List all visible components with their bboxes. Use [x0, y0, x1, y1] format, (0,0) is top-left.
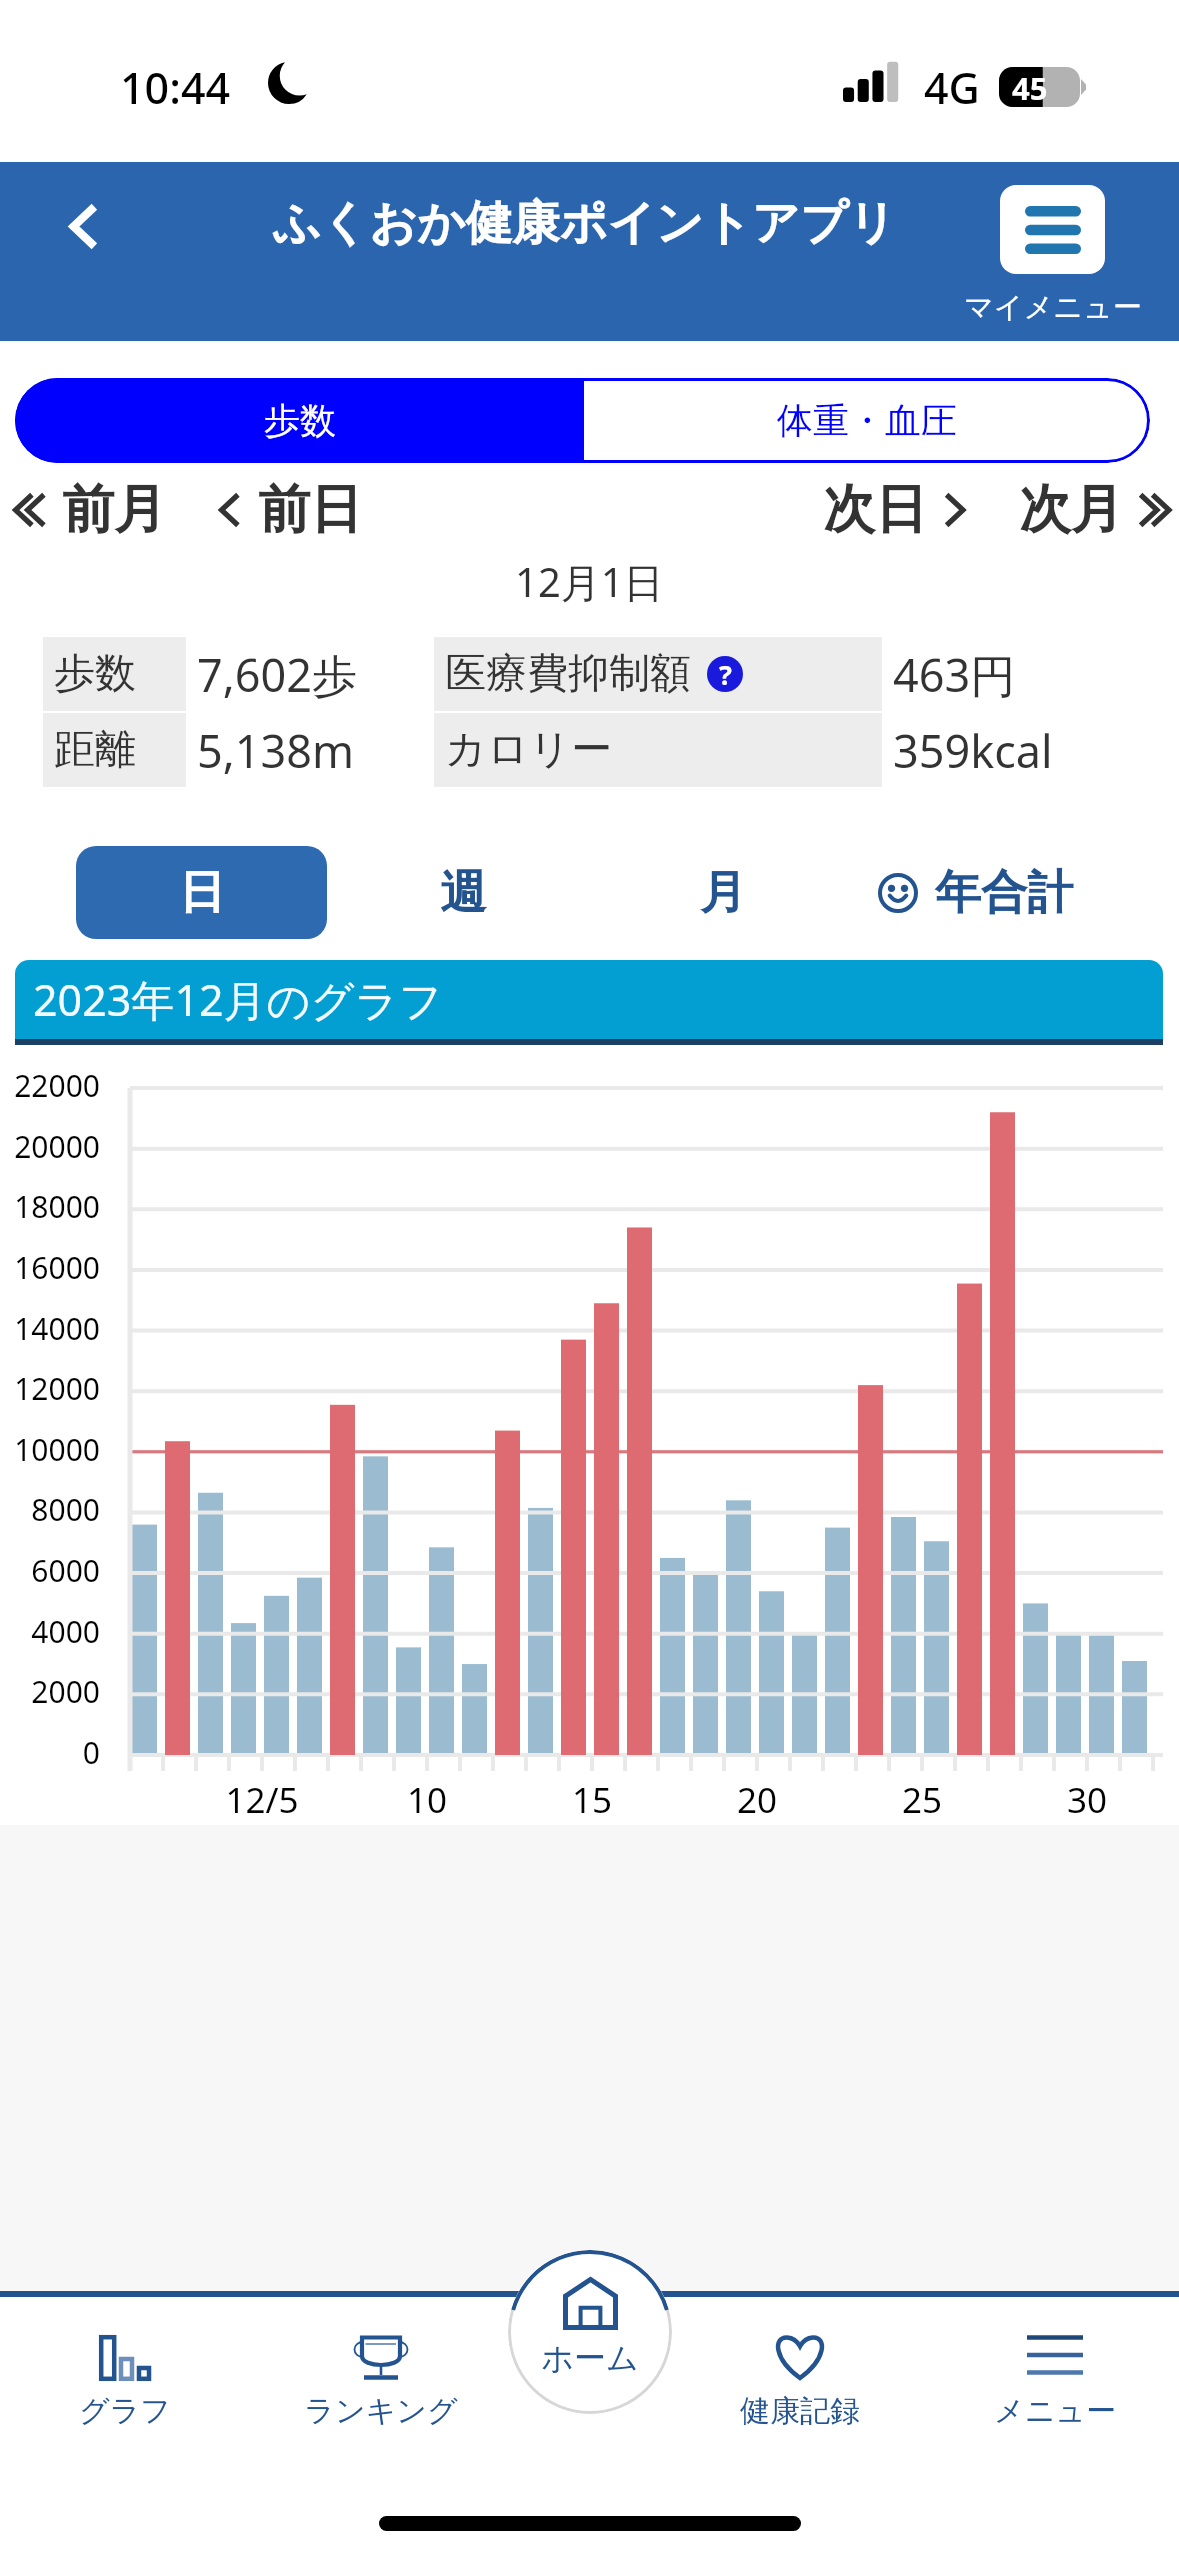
button[interactable]: 年合計: [878, 846, 1073, 939]
staticText: 体重・血圧: [777, 398, 957, 443]
staticText: 463円: [893, 644, 1016, 705]
staticText: 前月: [62, 477, 166, 543]
staticText: カロリー: [445, 724, 612, 776]
staticText: 月: [700, 864, 746, 922]
staticText: 18000: [0, 1186, 100, 1227]
button[interactable]: Back: [42, 186, 122, 266]
staticText: 4G: [924, 58, 980, 117]
staticText: 359kcal: [893, 720, 1053, 781]
staticText: ?: [719, 656, 732, 692]
staticText: 20000: [0, 1126, 100, 1167]
staticText: 歩数: [264, 398, 336, 443]
button[interactable]: Menu: [960, 2325, 1150, 2435]
staticText: 10:44: [120, 58, 231, 117]
staticText: 5,138m: [197, 720, 355, 781]
button[interactable]: Health record: [705, 2325, 895, 2435]
button[interactable]: 週: [373, 846, 553, 939]
staticText: 0: [0, 1732, 100, 1773]
button[interactable]: 歩数: [15, 378, 584, 463]
staticText: 22000: [0, 1065, 100, 1106]
button[interactable]: 次日: [823, 474, 965, 546]
staticText: 前日: [258, 477, 362, 543]
staticText: 次日: [823, 477, 927, 543]
button[interactable]: Help: [707, 656, 743, 692]
staticText: 年合計: [935, 864, 1073, 922]
staticText: 30: [1017, 1776, 1157, 1824]
staticText: 歩数: [54, 648, 136, 700]
staticText: 4000: [0, 1611, 100, 1652]
staticText: 6000: [0, 1550, 100, 1591]
button[interactable]: 前月: [14, 474, 166, 546]
button[interactable]: My menu: [960, 178, 1146, 330]
staticText: 週: [440, 864, 486, 922]
staticText: 2023年12月のグラフ: [33, 970, 443, 1029]
staticText: 次月: [1019, 477, 1123, 543]
staticText: 12月1日: [515, 554, 664, 609]
staticText: ふくおか健康ポイントアプリ: [273, 194, 897, 253]
staticText: 15: [522, 1776, 662, 1824]
button[interactable]: 月: [633, 846, 813, 939]
staticText: 健康記録: [705, 2392, 895, 2430]
staticText: 45: [1012, 67, 1048, 107]
staticText: 14000: [0, 1308, 100, 1349]
staticText: 10000: [0, 1429, 100, 1470]
staticText: メニュー: [960, 2392, 1150, 2430]
staticText: 20: [687, 1776, 827, 1824]
staticText: 12000: [0, 1368, 100, 1409]
button[interactable]: Graph: [30, 2325, 220, 2435]
staticText: 8000: [0, 1489, 100, 1530]
button[interactable]: 次月: [1019, 474, 1171, 546]
staticText: 7,602歩: [197, 644, 358, 705]
staticText: マイメニュー: [960, 289, 1146, 326]
staticText: グラフ: [30, 2392, 220, 2430]
button[interactable]: Home: [508, 2250, 672, 2414]
button[interactable]: Ranking: [286, 2325, 476, 2435]
button[interactable]: 体重・血圧: [584, 378, 1150, 463]
staticText: ホーム: [508, 2338, 672, 2378]
staticText: ランキング: [286, 2392, 476, 2430]
staticText: 2000: [0, 1671, 100, 1712]
staticText: 日: [179, 864, 225, 922]
button[interactable]: 日: [76, 846, 327, 939]
staticText: 12/5: [192, 1776, 332, 1824]
staticText: 25: [852, 1776, 992, 1824]
staticText: 医療費抑制額: [445, 648, 691, 700]
staticText: 10: [357, 1776, 497, 1824]
staticText: 距離: [54, 724, 136, 776]
button[interactable]: 前日: [220, 474, 362, 546]
staticText: 16000: [0, 1247, 100, 1288]
